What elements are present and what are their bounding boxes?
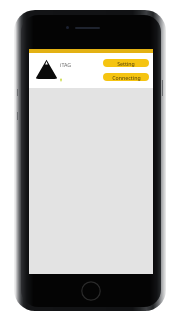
other: Home: [81, 281, 101, 301]
staticText: iTAG: [60, 61, 72, 68]
staticText: Connecting: [112, 74, 141, 81]
button[interactable]: Setting: [103, 59, 149, 67]
other: iTAG device: [35, 59, 58, 79]
staticText: Setting: [117, 60, 135, 67]
button[interactable]: Connecting: [103, 73, 149, 81]
